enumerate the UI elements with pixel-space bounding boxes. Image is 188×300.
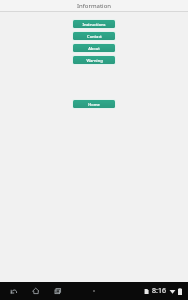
staticText: Information — [77, 2, 111, 10]
staticText: 8:16 — [152, 286, 166, 296]
button[interactable]: Status and time — [141, 286, 184, 296]
button[interactable]: Home — [72, 99, 116, 109]
button[interactable]: Contact — [72, 31, 116, 41]
button[interactable]: Recent apps — [50, 283, 66, 299]
staticText: Home — [88, 102, 100, 107]
button[interactable]: Instructions — [72, 19, 116, 29]
button[interactable]: About — [72, 43, 116, 53]
button[interactable]: Home — [28, 283, 44, 299]
staticText: About — [88, 46, 100, 51]
button[interactable]: Back — [6, 283, 22, 299]
staticText: Warning — [86, 58, 103, 63]
staticText: Instructions — [82, 22, 106, 27]
button[interactable]: Warning — [72, 55, 116, 65]
staticText: Contact — [87, 34, 102, 39]
